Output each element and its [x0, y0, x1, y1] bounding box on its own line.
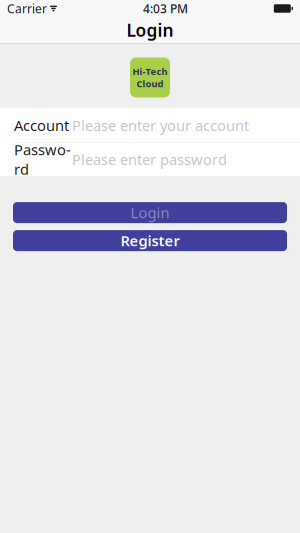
staticText: Please enter your account: [72, 115, 249, 135]
staticText: Hi-Tech: [132, 65, 167, 77]
staticText: Please enter password: [72, 150, 227, 169]
button[interactable]: Account: [0, 108, 300, 142]
staticText: Login: [126, 18, 173, 41]
button[interactable]: Register: [13, 230, 287, 251]
staticText: Login: [130, 203, 169, 222]
button[interactable]: Password: [0, 143, 300, 176]
staticText: Cloud: [136, 77, 163, 90]
staticText: 4:03 PM: [143, 0, 188, 16]
staticText: Carrier: [7, 0, 47, 16]
staticText: Password: [14, 140, 71, 179]
staticText: Register: [120, 231, 179, 250]
staticText: Account: [14, 115, 69, 135]
button[interactable]: Login: [13, 202, 287, 223]
